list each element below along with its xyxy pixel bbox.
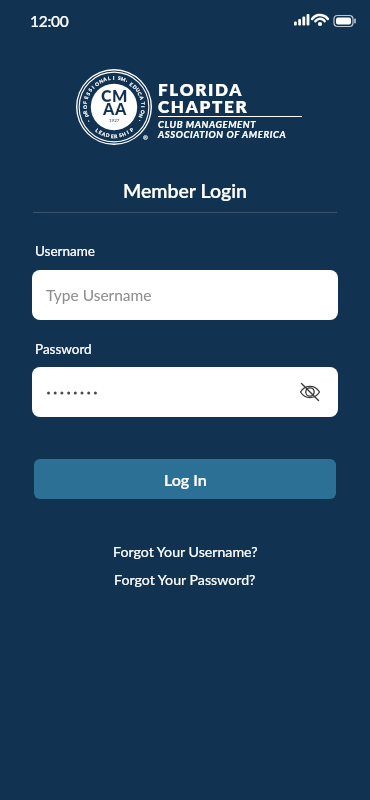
staticText: E	[111, 133, 114, 139]
staticText: Log In	[164, 470, 207, 489]
staticText: U	[134, 87, 142, 93]
staticText: ASSOCIATION OF AMERICA	[158, 129, 287, 140]
staticText: R	[114, 133, 118, 139]
staticText: E	[83, 95, 89, 100]
staticText: S	[85, 91, 92, 96]
staticText: F	[82, 101, 88, 104]
staticText: ·	[85, 119, 91, 123]
staticText: S	[87, 87, 94, 92]
staticText: H	[121, 130, 127, 137]
staticText: CLUB MANAGEMENT	[158, 119, 257, 130]
staticText: FLORIDA	[158, 79, 244, 99]
staticText: Member Login	[123, 179, 248, 202]
staticText: E	[98, 129, 103, 136]
staticText: A	[138, 95, 145, 101]
staticText: I	[113, 75, 115, 81]
staticText: ®	[143, 134, 148, 141]
staticText: O	[82, 105, 88, 109]
staticText: 1927	[109, 118, 120, 123]
staticText: S	[118, 132, 123, 138]
staticText: ·	[137, 119, 143, 123]
staticText: R	[82, 109, 88, 114]
staticText: C	[136, 91, 144, 97]
staticText: CHAPTER	[158, 96, 249, 116]
staticText: A	[102, 75, 108, 82]
staticText: A	[101, 130, 107, 137]
button[interactable]: Log In	[34, 459, 336, 499]
button[interactable]	[32, 367, 338, 417]
staticText: O	[94, 80, 100, 88]
staticText: O	[140, 109, 146, 114]
staticText: M	[120, 75, 127, 83]
button[interactable]	[299, 381, 321, 403]
staticText: Forgot Your Password?	[114, 571, 256, 588]
button[interactable]: Forgot Your Username?	[113, 543, 258, 560]
staticText: I	[90, 84, 96, 90]
button[interactable]: Type Username	[32, 270, 338, 320]
staticText: N	[137, 113, 144, 119]
staticText: Forgot Your Username?	[113, 543, 258, 560]
staticText: Password	[35, 341, 92, 357]
staticText: S	[117, 75, 121, 81]
staticText: D	[131, 83, 139, 91]
staticText: L	[94, 127, 100, 134]
button[interactable]: Forgot Your Password?	[114, 571, 256, 588]
staticText: N	[98, 77, 104, 85]
staticText: CM	[101, 86, 128, 105]
staticText: L	[107, 75, 111, 81]
staticText: E	[128, 81, 134, 88]
staticText: P	[83, 113, 90, 118]
staticText: 12:00	[30, 12, 69, 31]
staticText: Type Username	[46, 286, 152, 305]
staticText: I	[126, 129, 130, 135]
staticText: D	[105, 132, 111, 138]
staticText: Username	[35, 243, 95, 259]
staticText: AA	[103, 99, 127, 118]
staticText: T	[140, 102, 146, 105]
staticText: I	[140, 106, 146, 108]
staticText: P	[128, 126, 134, 133]
staticText: ·	[125, 78, 129, 84]
